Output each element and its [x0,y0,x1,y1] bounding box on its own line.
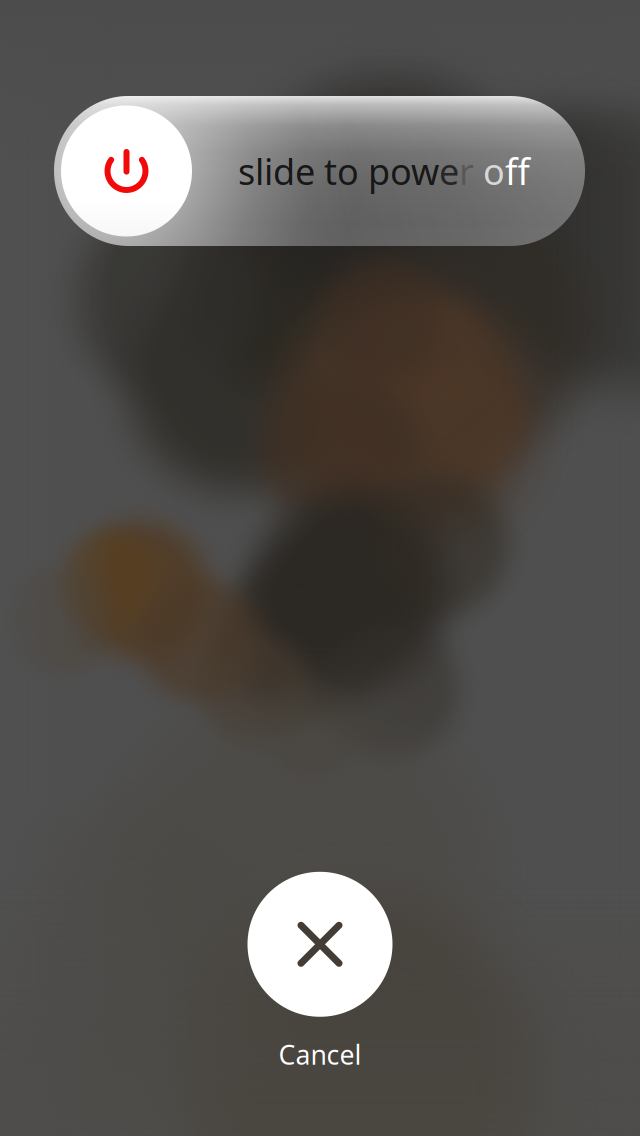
button[interactable]: slide to power off [54,96,585,246]
staticText: Cancel [278,1037,361,1072]
staticText: slide to power off [238,147,530,195]
button[interactable]: Cancel [247,872,392,1072]
